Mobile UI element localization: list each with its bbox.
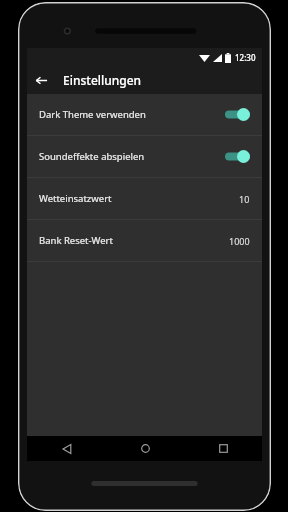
staticText: Einstellungen (63, 72, 142, 88)
staticText: Wetteinsatzwert (39, 192, 239, 205)
button[interactable]: Dark Theme verwenden (27, 94, 262, 135)
button[interactable]: Zurück (27, 66, 55, 94)
button[interactable]: Startseite (106, 436, 184, 461)
button[interactable]: Bank Reset-Wert (27, 220, 262, 261)
staticText: Bank Reset-Wert (39, 234, 229, 247)
staticText: Dark Theme verwenden (39, 108, 225, 121)
staticText: 10 (239, 193, 250, 205)
button[interactable]: Soundeffekte abspielen (27, 136, 262, 177)
staticText: Soundeffekte abspielen (39, 150, 225, 163)
staticText: 12:30 (235, 52, 256, 63)
button[interactable]: Letzte Apps (184, 436, 262, 461)
button[interactable]: Zurück (27, 436, 106, 461)
button[interactable]: Wetteinsatzwert (27, 178, 262, 219)
staticText: 1000 (229, 235, 250, 247)
